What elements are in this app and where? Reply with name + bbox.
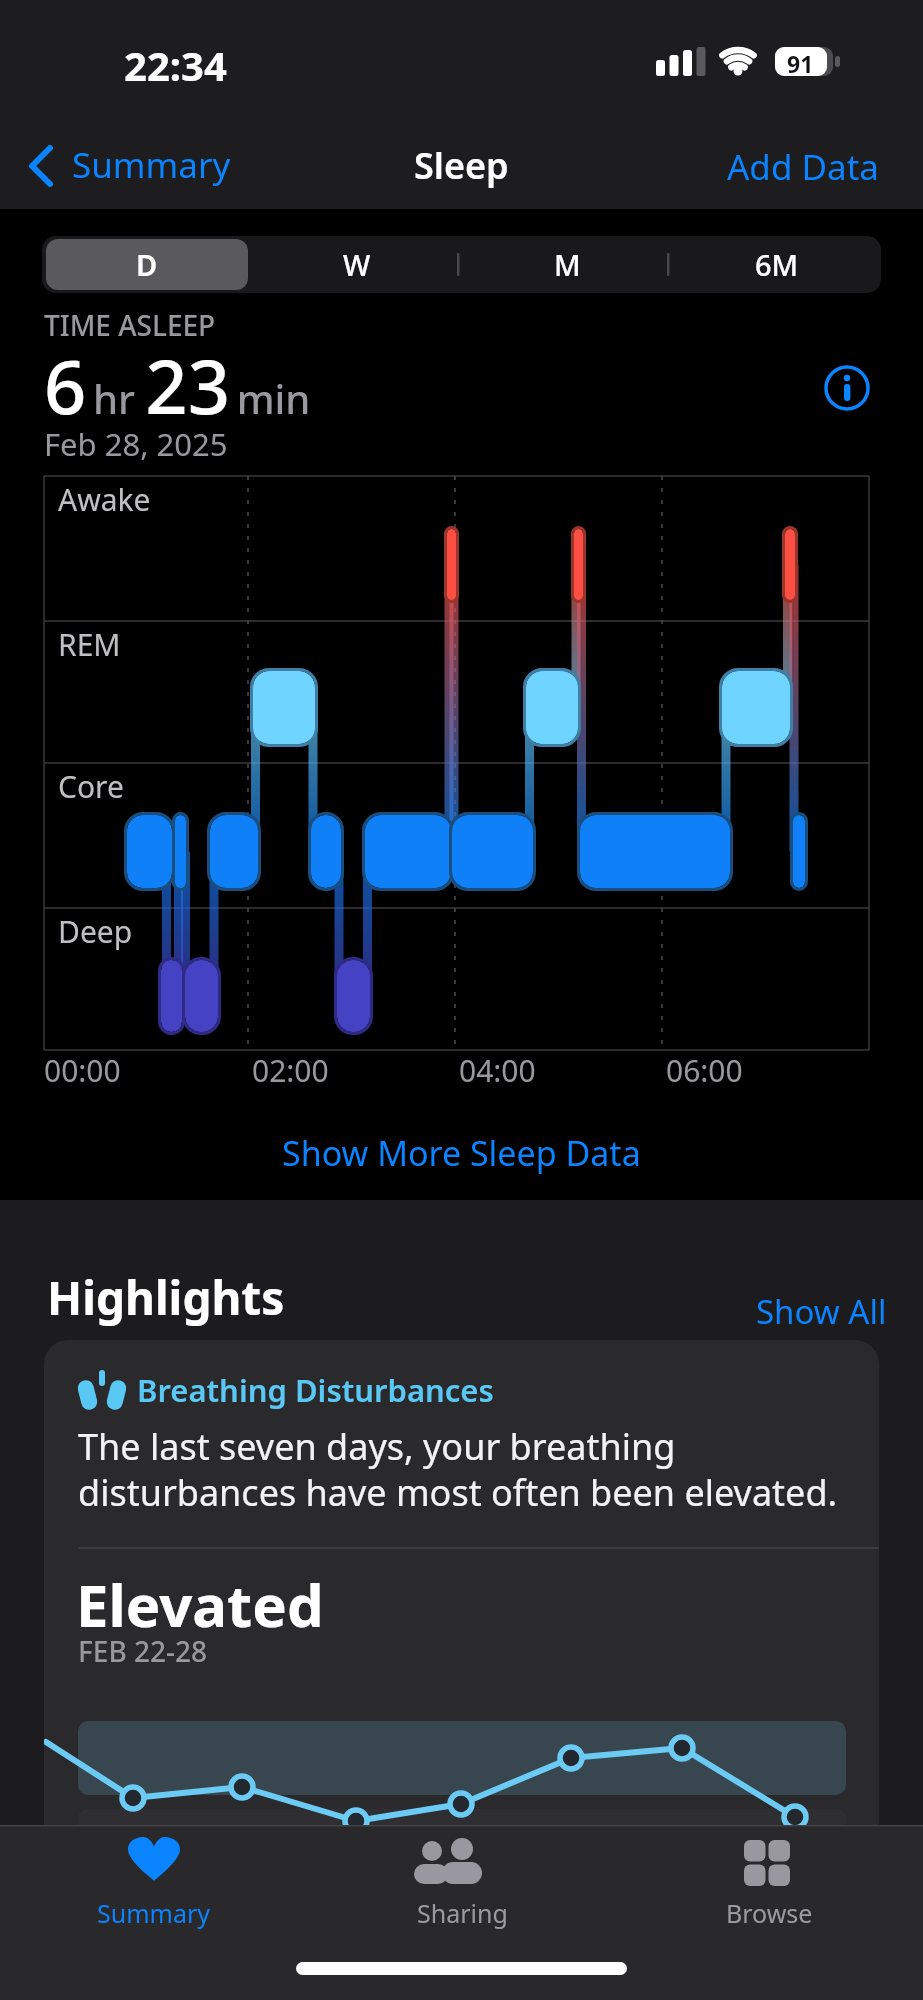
staticText: Sleep	[414, 141, 509, 190]
button[interactable]: Add Data	[727, 143, 879, 191]
staticText: Awake	[58, 479, 151, 520]
staticText: W	[343, 245, 371, 284]
staticText: 22:34	[124, 38, 227, 92]
staticText: Highlights	[47, 1266, 285, 1329]
button[interactable]: M	[462, 236, 672, 293]
button[interactable]: D	[42, 236, 252, 293]
staticText: Elevated	[76, 1565, 324, 1644]
button[interactable]	[74, 1833, 234, 1925]
staticText: Summary	[97, 1896, 211, 1930]
staticText: 91	[787, 48, 814, 79]
staticText: M	[554, 245, 581, 284]
staticText: Summary	[72, 141, 231, 189]
button[interactable]	[382, 1833, 542, 1925]
staticText: Deep	[58, 911, 133, 952]
button[interactable]: 6M	[672, 236, 881, 293]
staticText: D	[136, 245, 158, 284]
button[interactable]: Show All	[756, 1289, 887, 1334]
button[interactable]	[689, 1833, 849, 1925]
staticText: 04:00	[459, 1050, 536, 1091]
staticText: 00:00	[44, 1050, 121, 1091]
staticText: Core	[58, 766, 124, 807]
button[interactable]: Summary	[20, 138, 250, 190]
staticText: 6M	[755, 245, 799, 284]
staticText: Feb 28, 2025	[44, 423, 228, 465]
staticText: Sharing	[417, 1896, 508, 1930]
button[interactable]	[822, 363, 872, 413]
staticText: 02:00	[252, 1050, 329, 1091]
staticText: 06:00	[666, 1050, 743, 1091]
staticText: Browse	[726, 1896, 813, 1930]
button[interactable]: W	[252, 236, 462, 293]
button[interactable]: Breathing Disturbances	[44, 1340, 879, 2000]
staticText: Breathing Disturbances	[137, 1369, 494, 1411]
staticText: The last seven days, your breathing dist…	[78, 1422, 838, 1517]
staticText: FEB 22-28	[78, 1632, 208, 1670]
staticText: 6 hr 23 min	[44, 335, 311, 436]
staticText: REM	[58, 624, 121, 665]
staticText: TIME ASLEEP	[44, 306, 216, 344]
button[interactable]: Show More Sleep Data	[282, 1130, 641, 1176]
